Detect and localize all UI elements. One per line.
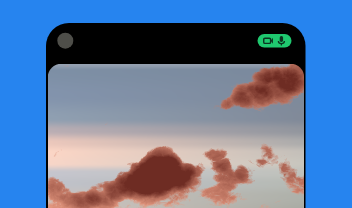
button[interactable]: Camera and microphone in use	[0, 0, 352, 208]
